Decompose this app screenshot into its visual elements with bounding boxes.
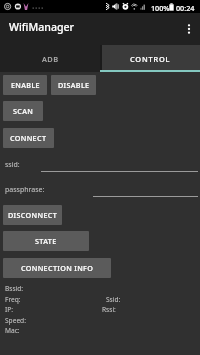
button[interactable]: More options	[178, 13, 200, 45]
staticText: CONTROL	[130, 54, 171, 64]
staticText: 00:24	[176, 3, 195, 13]
staticText: STATE	[35, 236, 57, 246]
button[interactable]: SCAN	[3, 101, 43, 121]
button[interactable]: ENABLE	[3, 75, 47, 95]
staticText: ENABLE	[11, 80, 40, 90]
button[interactable]: CONTROL	[100, 45, 200, 72]
staticText: Freq:	[5, 295, 21, 304]
staticText: Rssi:	[102, 305, 116, 314]
button[interactable]: CONNECT	[3, 128, 54, 148]
button[interactable]: DISCONNECT	[3, 205, 62, 225]
button[interactable]: STATE	[3, 231, 89, 251]
staticText: CONNECT	[10, 133, 47, 143]
button[interactable]: DISABLE	[51, 75, 96, 95]
staticText: SCAN	[13, 106, 34, 116]
staticText: WifiManager	[9, 20, 75, 34]
staticText: ADB	[42, 54, 59, 64]
staticText: Speed:	[5, 316, 26, 325]
staticText: passphrase:	[5, 185, 45, 195]
staticText: 100%	[151, 3, 170, 13]
button[interactable]: ADB	[0, 45, 100, 72]
staticText: DISABLE	[58, 80, 90, 90]
staticText: Bssid:	[5, 284, 24, 293]
staticText: CONNECTION INFO	[21, 263, 94, 273]
staticText: IP:	[5, 305, 13, 314]
staticText: DISCONNECT	[8, 210, 58, 220]
button[interactable]: CONNECTION INFO	[3, 258, 111, 278]
staticText: ssid:	[5, 160, 20, 170]
staticText: Mac:	[5, 326, 20, 335]
staticText: Ssid:	[106, 295, 121, 304]
